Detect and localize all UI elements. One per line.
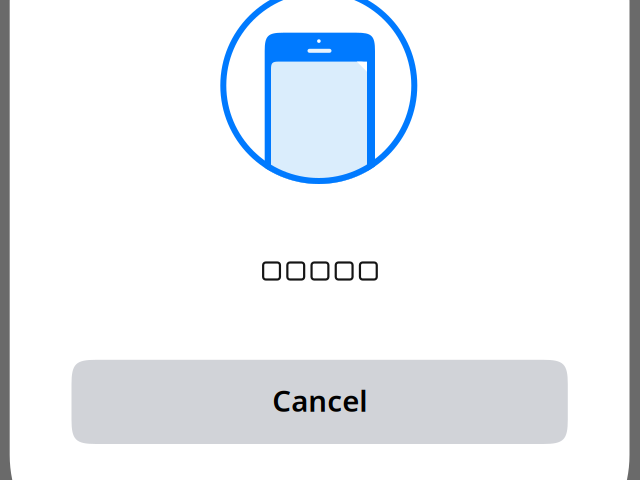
button[interactable]: Cancel <box>71 360 568 444</box>
staticText: Cancel <box>272 381 367 420</box>
